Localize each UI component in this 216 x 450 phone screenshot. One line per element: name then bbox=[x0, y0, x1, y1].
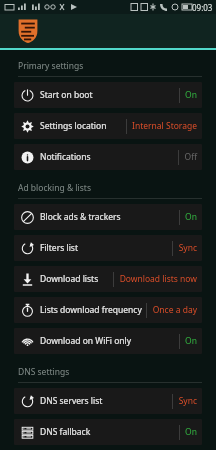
button[interactable]: Notifications bbox=[14, 144, 202, 170]
button[interactable]: DNS servers list bbox=[14, 388, 202, 414]
staticText: Download on WiFi only bbox=[40, 335, 179, 347]
staticText: Primary settings bbox=[18, 60, 84, 72]
button[interactable]: DNS fallback bbox=[14, 419, 202, 445]
staticText: DNS servers list bbox=[40, 395, 172, 407]
staticText: Lists download frequency bbox=[40, 304, 146, 316]
button[interactable]: Settings location bbox=[14, 113, 202, 139]
button[interactable]: Download lists bbox=[14, 266, 202, 292]
staticText: DNS settings bbox=[18, 366, 70, 378]
staticText: Filters list bbox=[40, 242, 172, 254]
staticText: Once a day bbox=[152, 304, 197, 316]
staticText: 09:03 bbox=[192, 2, 213, 13]
staticText: Block ads & trackers bbox=[40, 211, 179, 223]
staticText: Start on boot bbox=[40, 89, 179, 101]
staticText: Off bbox=[184, 151, 197, 163]
staticText: Sync bbox=[178, 395, 197, 407]
staticText: Download lists bbox=[40, 273, 113, 285]
staticText: DNS fallback bbox=[40, 426, 179, 438]
button[interactable]: Block ads & trackers bbox=[14, 204, 202, 230]
button[interactable]: Download on WiFi only bbox=[14, 328, 202, 354]
button[interactable]: Lists download frequency bbox=[14, 297, 202, 323]
other: App logo bbox=[18, 19, 38, 43]
staticText: Internal Storage bbox=[132, 120, 197, 132]
staticText: On bbox=[185, 89, 197, 101]
staticText: Settings location bbox=[40, 120, 126, 132]
staticText: On bbox=[185, 335, 197, 347]
staticText: On bbox=[185, 211, 197, 223]
button[interactable]: Start on boot bbox=[14, 82, 202, 108]
staticText: Ad blocking & lists bbox=[18, 182, 91, 194]
staticText: On bbox=[185, 426, 197, 438]
button[interactable]: Filters list bbox=[14, 235, 202, 261]
staticText: Download lists now bbox=[119, 273, 197, 285]
staticText: Sync bbox=[178, 242, 197, 254]
staticText: Notifications bbox=[40, 151, 178, 163]
